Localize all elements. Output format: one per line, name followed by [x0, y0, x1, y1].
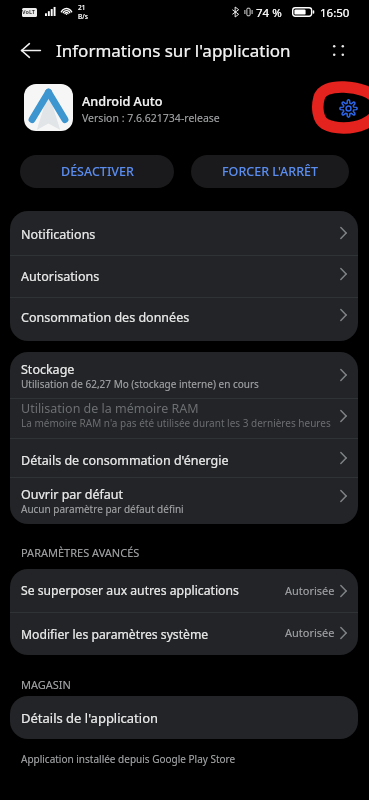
button[interactable]: More options [321, 33, 355, 67]
staticText: Stockage [21, 361, 75, 378]
staticText: Autorisée [285, 625, 335, 640]
staticText: Ouvrir par défaut [21, 486, 124, 503]
button[interactable]: Notifications [10, 211, 358, 255]
button[interactable]: FORCER L'ARRÊT [191, 155, 349, 188]
staticText: Application installée depuis Google Play… [21, 752, 236, 766]
staticText: Informations sur l'application [56, 39, 291, 62]
staticText: Détails de l'application [21, 709, 159, 727]
staticText: Autorisations [21, 268, 100, 285]
staticText: B/s [78, 12, 88, 21]
button[interactable]: DÉSACTIVER [20, 155, 174, 188]
staticText: VoLTE [22, 8, 37, 17]
staticText: Android Auto [82, 92, 163, 109]
button[interactable]: Consommation des données [10, 298, 358, 341]
staticText: Version : 7.6.621734-release [82, 111, 220, 125]
staticText: 21 [78, 3, 86, 12]
staticText: Utilisation de la mémoire RAM [21, 400, 199, 417]
staticText: Détails de consommation d'énergie [21, 452, 229, 469]
button[interactable]: Se superposer aux autres applications [10, 569, 358, 612]
button[interactable]: Modifier les paramètres système [10, 613, 358, 655]
staticText: Se superposer aux autres applications [21, 582, 239, 599]
button[interactable]: Détails de l'application [10, 696, 358, 739]
button[interactable]: Utilisation de la mémoire RAM [10, 399, 358, 438]
staticText: 74 % [256, 5, 282, 21]
staticText: La mémoire RAM n'a pas été utilisée dura… [21, 416, 331, 430]
button[interactable]: Settings [330, 90, 366, 126]
button[interactable]: Back [13, 32, 49, 68]
button[interactable]: Stockage [10, 352, 358, 398]
staticText: Consommation des données [21, 309, 190, 326]
staticText: Aucun paramètre par défaut défini [21, 502, 184, 516]
staticText: FORCER L'ARRÊT [222, 163, 319, 180]
staticText: 16:50 [320, 5, 350, 21]
staticText: PARAMÈTRES AVANCÉS [21, 545, 140, 560]
staticText: MAGASIN [21, 677, 71, 692]
button[interactable]: Autorisations [10, 256, 358, 297]
button[interactable]: Ouvrir par défaut [10, 478, 358, 524]
staticText: DÉSACTIVER [61, 163, 134, 180]
staticText: Autorisée [285, 583, 335, 598]
button[interactable]: Détails de consommation d'énergie [10, 439, 358, 477]
staticText: Notifications [21, 226, 96, 243]
staticText: Modifier les paramètres système [21, 626, 209, 643]
staticText: Utilisation de 62,27 Mo (stockage intern… [21, 377, 259, 391]
